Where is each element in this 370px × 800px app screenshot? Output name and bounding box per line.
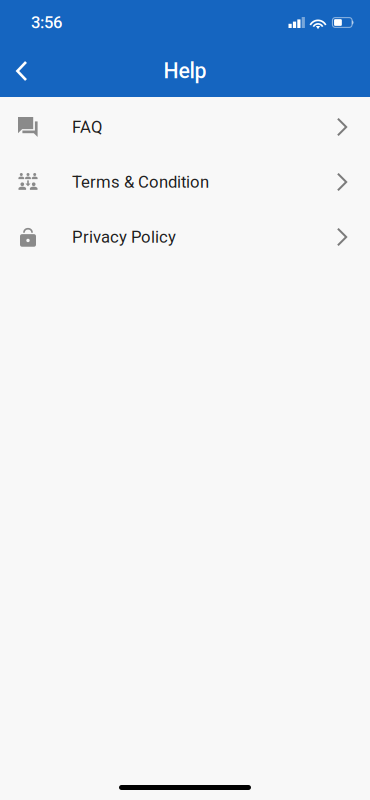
button[interactable]: Back — [0, 49, 42, 93]
staticText: FAQ — [72, 117, 102, 137]
staticText: Help — [163, 58, 206, 83]
button[interactable]: FAQ — [0, 99, 370, 154]
staticText: Terms & Condition — [72, 172, 209, 192]
button[interactable]: Terms & Condition — [0, 154, 370, 209]
staticText: Privacy Policy — [72, 227, 176, 247]
button[interactable]: Privacy Policy — [0, 209, 370, 264]
staticText: 3:56 — [31, 13, 62, 32]
